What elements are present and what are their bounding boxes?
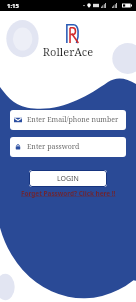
staticText: LOGIN xyxy=(57,174,79,184)
staticText: Enter password xyxy=(27,142,80,152)
staticText: Forget Password? Click here !! xyxy=(21,189,116,198)
button[interactable]: Forget Password? Click here !! xyxy=(0,189,136,198)
button[interactable]: Enter Email/phone number xyxy=(10,110,126,130)
button[interactable]: LOGIN xyxy=(29,170,107,187)
staticText: RollerAce xyxy=(0,44,136,59)
staticText: 1:15 xyxy=(7,2,19,10)
button[interactable]: Enter password xyxy=(10,137,126,157)
staticText: Enter Email/phone number xyxy=(27,115,119,125)
